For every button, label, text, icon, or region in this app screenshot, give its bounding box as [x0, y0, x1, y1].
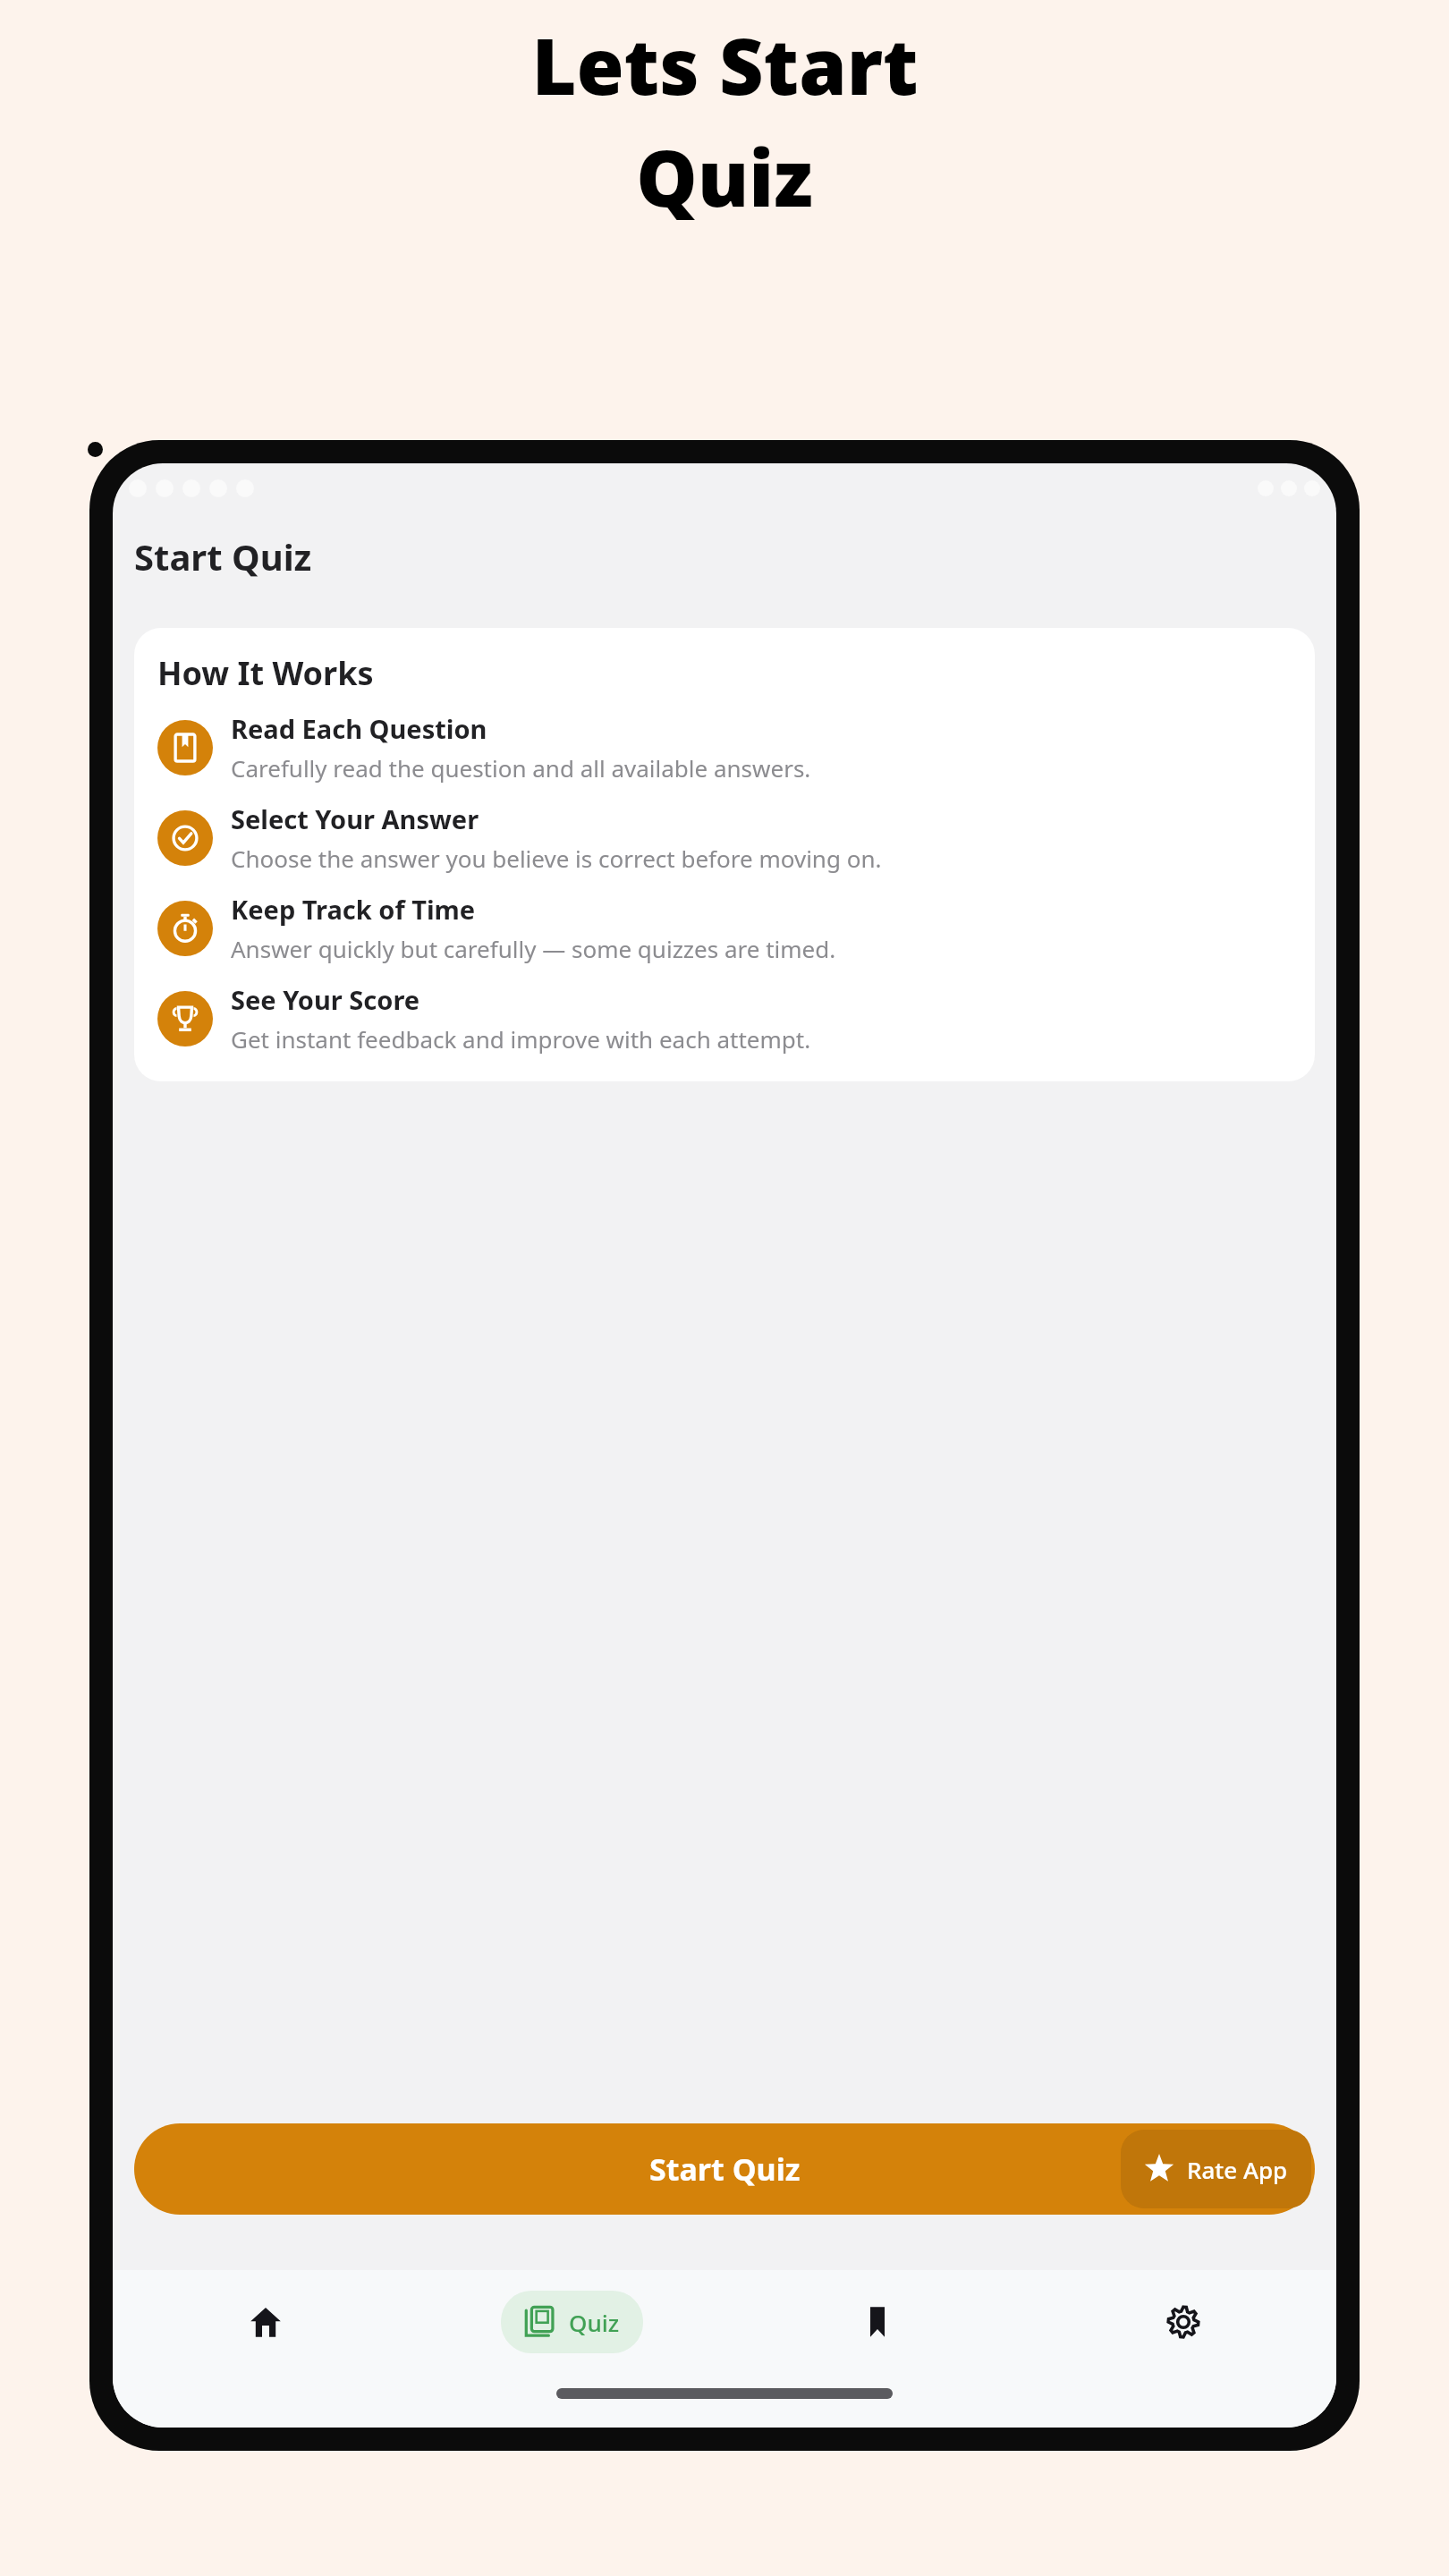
staticText: Get instant feedback and improve with ea…	[231, 1023, 811, 1055]
staticText: Quiz	[569, 2307, 620, 2338]
staticText: Start Quiz	[134, 532, 312, 580]
button[interactable]: Read Each Question	[157, 711, 1292, 784]
button[interactable]: Bookmarks	[724, 2270, 1030, 2374]
staticText: Keep Track of Time	[231, 892, 476, 927]
button[interactable]: Home	[113, 2270, 419, 2374]
button[interactable]: Start Quiz	[134, 2123, 1315, 2215]
staticText: Carefully read the question and all avai…	[231, 752, 811, 784]
button[interactable]: Settings	[1030, 2270, 1336, 2374]
button[interactable]: Quiz	[501, 2291, 643, 2353]
button[interactable]: Select Your Answer	[157, 801, 1292, 874]
staticText: Lets Start	[531, 13, 919, 117]
staticText: Quiz	[636, 124, 813, 229]
staticText: Start Quiz	[649, 2148, 801, 2190]
staticText: Rate App	[1187, 2154, 1288, 2185]
staticText: Answer quickly but carefully — some quiz…	[231, 933, 836, 964]
button[interactable]: See Your Score	[157, 982, 1292, 1055]
button[interactable]: Rate App	[1121, 2130, 1311, 2208]
button[interactable]: Keep Track of Time	[157, 892, 1292, 964]
staticText: Read Each Question	[231, 711, 487, 746]
staticText: How It Works	[157, 651, 374, 695]
staticText: Choose the answer you believe is correct…	[231, 843, 882, 874]
staticText: Select Your Answer	[231, 801, 479, 836]
staticText: See Your Score	[231, 982, 420, 1017]
